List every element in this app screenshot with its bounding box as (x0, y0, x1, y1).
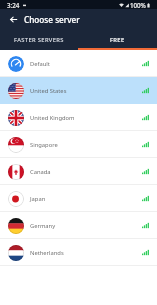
button[interactable]: Default (0, 50, 157, 77)
staticText: Choose server (24, 14, 80, 25)
button[interactable]: Germany (0, 212, 157, 239)
staticText: Singapore (30, 141, 142, 149)
staticText: Japan (30, 195, 142, 203)
staticText: FREE (110, 36, 125, 44)
button[interactable]: Canada (0, 158, 157, 185)
button[interactable]: Japan (0, 185, 157, 212)
button[interactable]: FASTER SERVERS (0, 29, 78, 50)
button[interactable]: United States (0, 77, 157, 104)
staticText: Germany (30, 222, 142, 230)
staticText: United States (30, 87, 142, 95)
staticText: United Kingdom (30, 114, 142, 122)
staticText: 100% (130, 1, 146, 9)
staticText: Default (30, 60, 142, 68)
button[interactable]: Netherlands (0, 239, 157, 266)
button[interactable]: United Kingdom (0, 104, 157, 131)
staticText: FASTER SERVERS (14, 36, 64, 44)
button[interactable]: FREE (78, 29, 157, 50)
staticText: Netherlands (30, 249, 142, 257)
button[interactable]: Back (0, 9, 26, 29)
button[interactable]: Singapore (0, 131, 157, 158)
staticText: 3:24 (7, 1, 20, 9)
staticText: Canada (30, 168, 142, 176)
